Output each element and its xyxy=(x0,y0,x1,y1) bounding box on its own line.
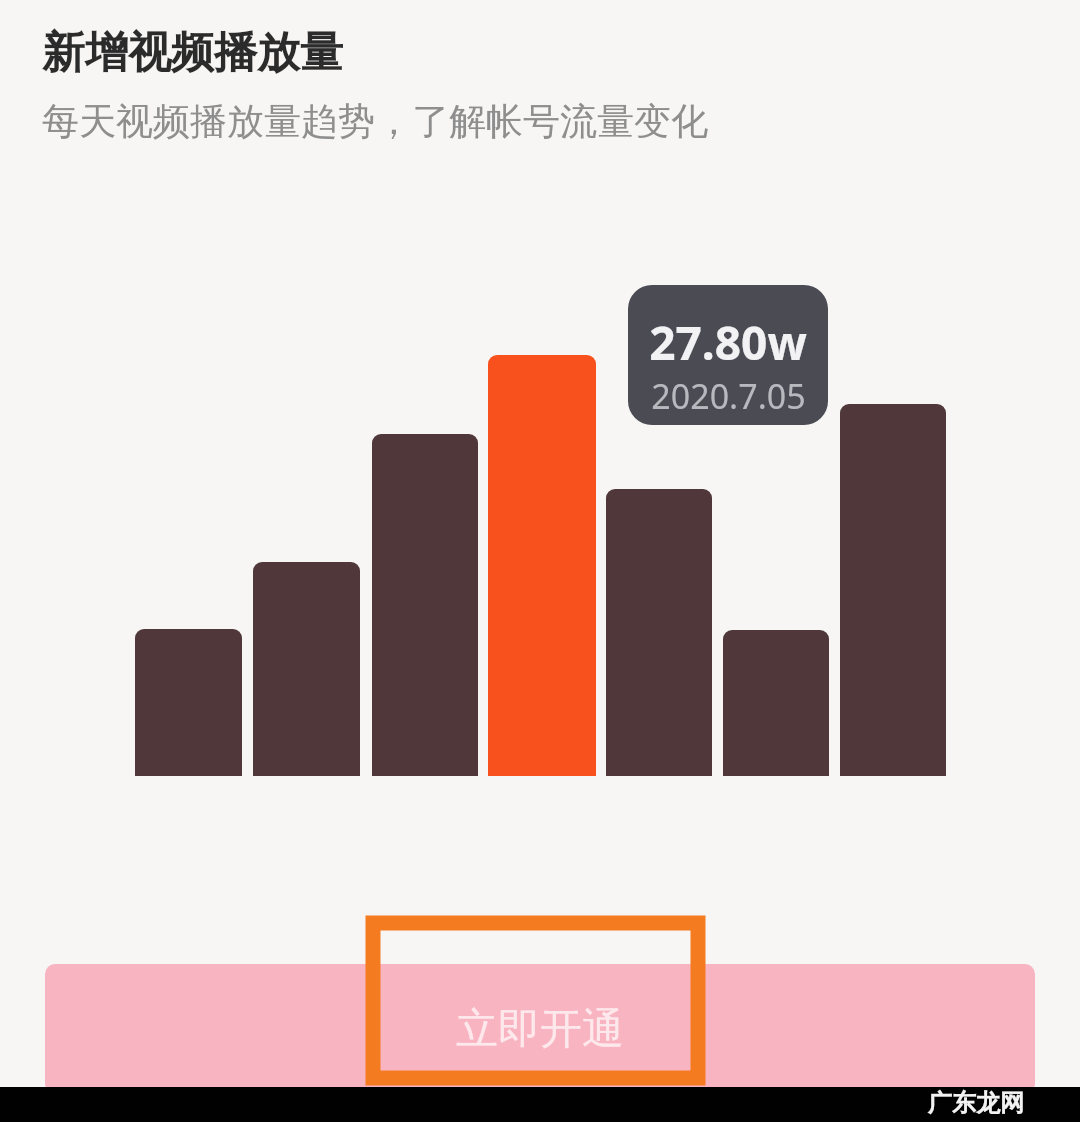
staticText: 27.80w xyxy=(649,311,807,374)
button[interactable]: 立即开通 xyxy=(45,964,1035,1094)
staticText: 2020.7.05 xyxy=(651,373,806,419)
staticText: 立即开通 xyxy=(456,1003,624,1056)
staticText: 新增视频播放量 xyxy=(42,26,343,80)
staticText: 每天视频播放量趋势，了解帐号流量变化 xyxy=(42,98,708,145)
staticText: 广东龙网 xyxy=(928,1088,1024,1118)
